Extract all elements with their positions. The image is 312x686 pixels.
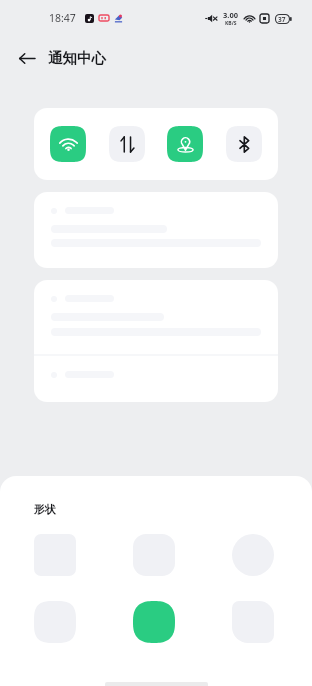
button[interactable]: Circle shape <box>232 534 274 576</box>
button[interactable]: Soft square shape <box>34 601 76 643</box>
button[interactable]: Rounded square shape <box>133 534 175 576</box>
button[interactable]: Squircle shape, selected <box>133 601 175 643</box>
button[interactable] <box>34 192 278 268</box>
staticText: 37 <box>278 15 286 24</box>
staticText: 形状 <box>34 502 56 516</box>
button[interactable] <box>34 280 278 402</box>
button[interactable]: Mobile data <box>109 126 145 162</box>
staticText: KB/S <box>225 20 237 27</box>
staticText: 18:47 <box>49 11 76 25</box>
button[interactable]: Wi-Fi <box>50 126 86 162</box>
button[interactable]: Asymmetric shape <box>232 601 274 643</box>
button[interactable]: Back <box>11 42 43 74</box>
staticText: 3.00 <box>223 10 238 20</box>
button[interactable]: Location <box>167 126 203 162</box>
staticText: 通知中心 <box>48 49 106 67</box>
button[interactable]: Bluetooth <box>226 126 262 162</box>
